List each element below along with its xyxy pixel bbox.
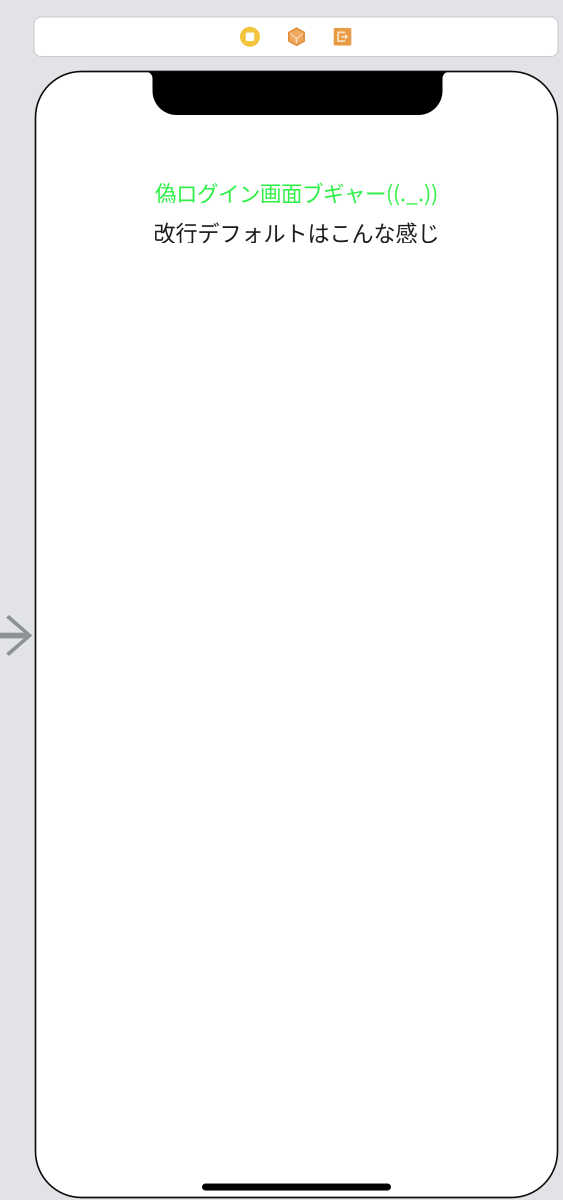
button[interactable]: Stop preview: [240, 27, 260, 47]
button[interactable]: Inspect in 3D: [287, 27, 306, 46]
staticText: 改行デフォルトはこんな感じ: [153, 216, 439, 248]
staticText: 偽ログイン画面ブギャー((._.)): [155, 176, 438, 208]
button[interactable]: Send to device: [333, 27, 352, 46]
